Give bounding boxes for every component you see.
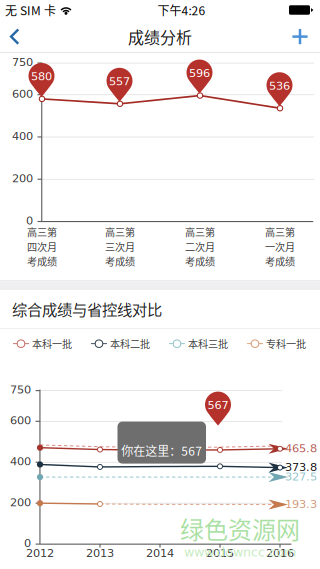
staticText: 327.5 [285, 470, 317, 483]
staticText: 0 [24, 537, 31, 550]
staticText: 373.8 [285, 460, 317, 474]
staticText: 无 SIM 卡 [5, 1, 56, 19]
staticText: 本科一批 [32, 336, 72, 351]
staticText: 193.3 [285, 497, 317, 511]
staticText: 高三第 一次月 考成绩 [265, 224, 295, 268]
staticText: 580 [31, 70, 52, 83]
staticText: 专科一批 [266, 336, 306, 351]
staticText: 750 [10, 383, 31, 396]
staticText: 2012 [26, 547, 54, 560]
staticText: 高三第 二次月 考成绩 [185, 224, 215, 268]
button[interactable]: Back [4, 21, 36, 52]
staticText: 596 [189, 66, 210, 80]
staticText: 400 [10, 455, 31, 468]
staticText: 200 [10, 496, 31, 509]
staticText: 你在这里：567 [121, 442, 202, 459]
staticText: 高三第 四次月 考成绩 [27, 224, 57, 268]
staticText: 600 [12, 87, 33, 100]
staticText: 绿色资源网 [180, 511, 300, 546]
staticText: 2016 [266, 547, 294, 560]
staticText: 0 [26, 214, 33, 227]
staticText: 400 [12, 129, 33, 143]
staticText: 465.8 [285, 442, 317, 455]
button[interactable]: Add [284, 21, 316, 52]
staticText: 下午4:26 [157, 1, 205, 19]
staticText: 高三第 三次月 考成绩 [105, 224, 135, 268]
staticText: www.downcc.com [184, 545, 296, 559]
staticText: 2013 [86, 547, 114, 560]
staticText: 2015 [206, 547, 234, 560]
staticText: 综合成绩与省控线对比 [12, 298, 162, 320]
staticText: 557 [109, 75, 130, 88]
staticText: 本科二批 [110, 336, 150, 351]
staticText: 567 [207, 398, 228, 412]
staticText: 536 [269, 79, 290, 92]
staticText: 200 [12, 172, 33, 185]
staticText: 成绩分析 [128, 25, 192, 48]
staticText: 750 [12, 55, 33, 69]
staticText: 本科三批 [188, 336, 228, 351]
staticText: 2014 [146, 547, 174, 560]
staticText: 600 [10, 414, 31, 427]
